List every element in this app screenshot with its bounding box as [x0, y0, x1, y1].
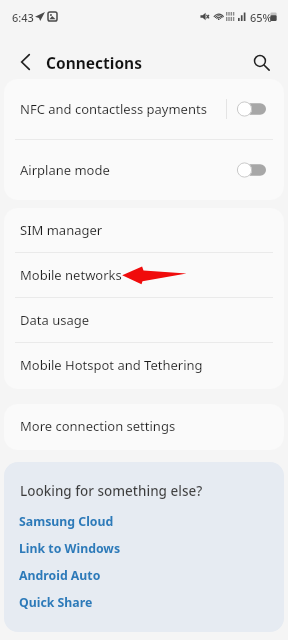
button[interactable]: Data usage: [4, 298, 284, 342]
staticText: Quick Share: [19, 594, 93, 611]
button[interactable]: Mobile Hotspot and Tethering: [4, 343, 284, 387]
staticText: Mobile Hotspot and Tethering: [20, 356, 203, 374]
staticText: SIM manager: [20, 221, 103, 239]
staticText: More connection settings: [20, 417, 176, 435]
staticText: NFC and contactless payments: [20, 100, 207, 118]
button[interactable]: Search: [243, 44, 279, 80]
staticText: Android Auto: [19, 567, 101, 584]
staticText: Samsung Cloud: [19, 513, 114, 530]
staticText: Link to Windows: [19, 540, 121, 557]
button[interactable]: SIM manager: [4, 208, 284, 252]
button[interactable]: Samsung Cloud: [4, 508, 284, 535]
button[interactable]: More connection settings: [4, 404, 284, 448]
button[interactable]: Back: [7, 44, 43, 80]
button[interactable]: Quick Share: [4, 589, 284, 616]
staticText: Mobile networks: [20, 266, 122, 284]
button[interactable]: Android Auto: [4, 562, 284, 589]
button[interactable]: Mobile networks: [4, 253, 284, 297]
staticText: Looking for something else?: [20, 482, 203, 500]
button[interactable]: Link to Windows: [4, 535, 284, 562]
button[interactable]: NFC and contactless payments: [4, 79, 284, 139]
staticText: Airplane mode: [20, 161, 110, 179]
button[interactable]: Toggle off: [237, 101, 266, 117]
staticText: 65%: [250, 10, 272, 25]
button[interactable]: Airplane mode: [4, 140, 284, 200]
staticText: Data usage: [20, 311, 90, 329]
staticText: 6:43: [12, 10, 34, 25]
staticText: Connections: [46, 52, 142, 73]
button[interactable]: Toggle off: [237, 162, 266, 178]
